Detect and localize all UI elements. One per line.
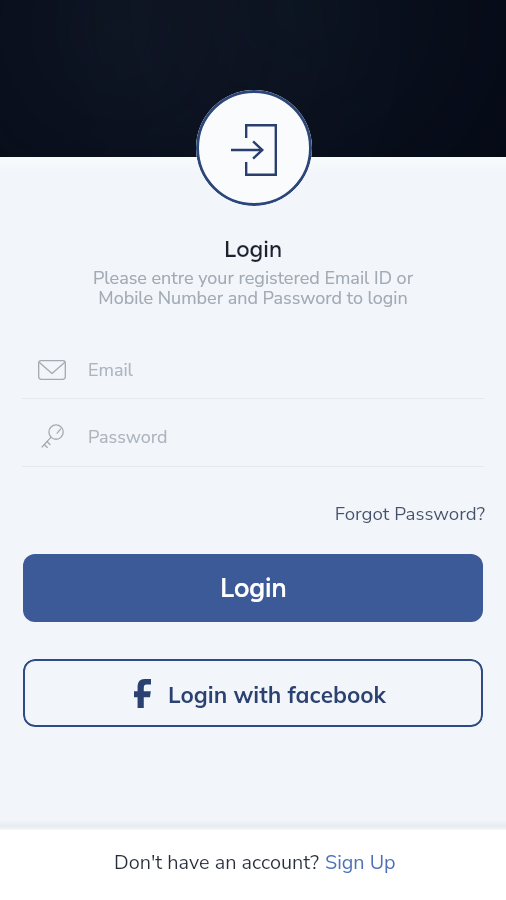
staticText: Email <box>88 358 133 383</box>
button[interactable]: Email <box>22 348 484 392</box>
staticText: Login <box>0 235 506 263</box>
button[interactable]: Forgot Password? <box>322 500 485 528</box>
other: Login <box>196 90 312 206</box>
staticText: Password <box>88 425 168 450</box>
button[interactable]: Login <box>23 554 483 622</box>
staticText: Login <box>220 572 287 604</box>
staticText: Login with facebook <box>168 680 386 708</box>
staticText: Forgot Password? <box>322 501 485 527</box>
staticText: Don't have an account? <box>114 849 325 876</box>
button[interactable]: Login with facebook <box>23 659 483 727</box>
staticText: Please entre your registered Email ID or… <box>0 266 506 310</box>
button[interactable]: Password <box>22 415 484 459</box>
button[interactable]: Sign Up <box>325 849 396 876</box>
